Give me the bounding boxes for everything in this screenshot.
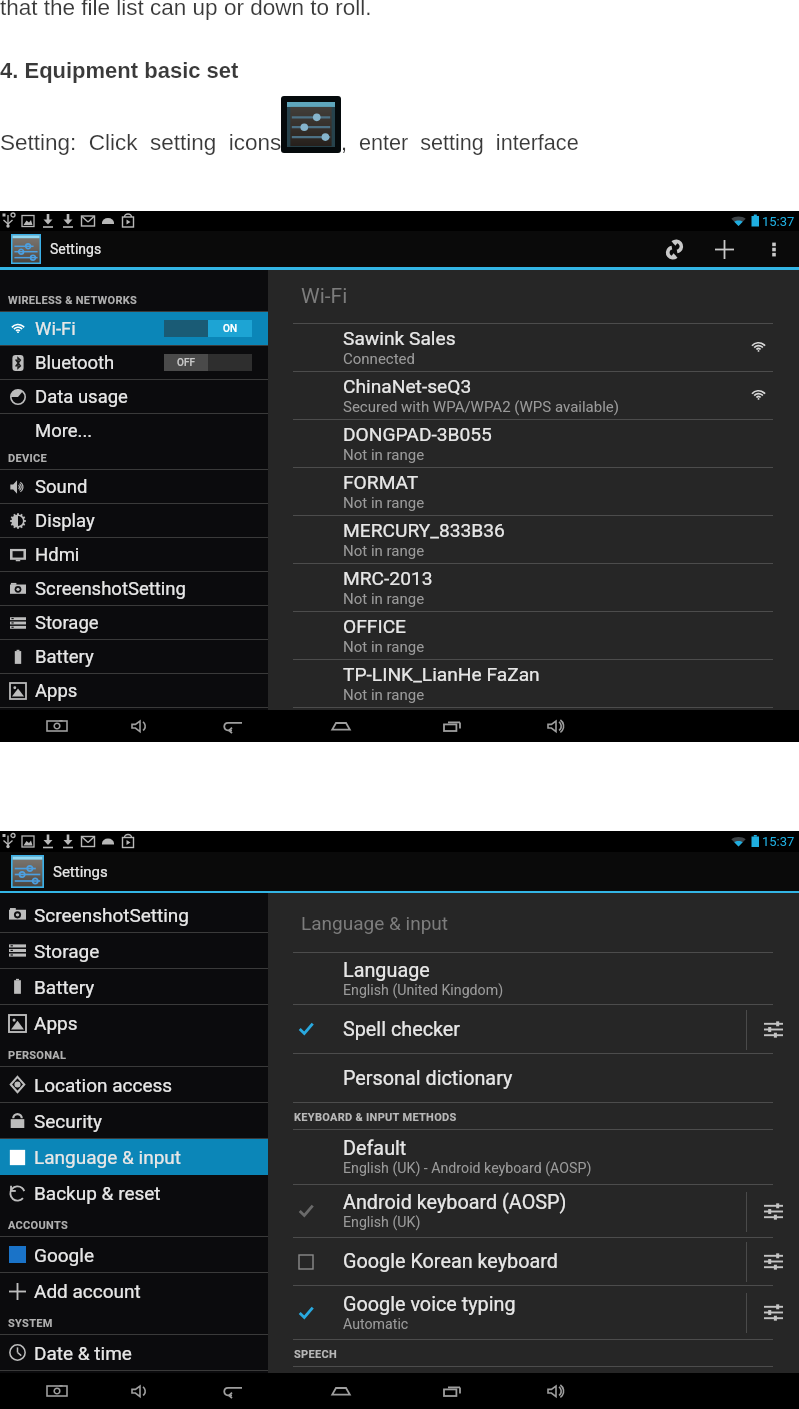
button[interactable]: ON — [164, 320, 252, 337]
button[interactable]: Apps — [0, 674, 268, 707]
staticText: Storage — [35, 612, 99, 634]
button[interactable]: Location access — [0, 1067, 268, 1102]
staticText: WIRELESS & NETWORKS — [8, 294, 138, 307]
staticText: Google voice typing — [343, 1293, 516, 1316]
button[interactable]: OFF — [164, 354, 252, 371]
button[interactable]: Recents — [436, 710, 470, 742]
button[interactable]: Language — [268, 953, 799, 1004]
staticText: 15:37 — [762, 214, 795, 229]
button[interactable]: Spell checker — [268, 1005, 799, 1053]
staticText: English (United Kingdom) — [343, 982, 504, 999]
button[interactable]: Battery — [0, 969, 268, 1004]
button[interactable]: Date & time — [0, 1335, 268, 1370]
button[interactable]: Back — [216, 1374, 250, 1408]
button[interactable]: Add network — [706, 231, 742, 267]
button[interactable]: Display — [0, 504, 268, 537]
button[interactable]: ScreenshotSetting — [0, 572, 268, 605]
button[interactable]: MERCURY_833B36 — [268, 516, 799, 563]
staticText: Not in range — [343, 638, 425, 656]
button[interactable]: Default — [268, 1130, 799, 1184]
staticText: Display — [35, 510, 95, 532]
button[interactable]: Volume — [124, 1374, 158, 1408]
button[interactable]: Refresh — [656, 231, 692, 267]
staticText: Automatic — [343, 1316, 409, 1333]
staticText: Language & input — [34, 1146, 181, 1168]
button[interactable]: Personal dictionary — [268, 1054, 799, 1102]
button[interactable]: More... — [0, 414, 268, 448]
button[interactable]: Storage — [0, 606, 268, 639]
button[interactable]: Settings — [747, 1289, 799, 1336]
button[interactable]: Storage — [0, 933, 268, 968]
staticText: Backup & reset — [34, 1182, 161, 1204]
staticText: Security — [34, 1110, 103, 1132]
staticText: Wi-Fi — [301, 284, 348, 309]
button[interactable]: Google voice typing — [268, 1286, 799, 1339]
button[interactable]: Home — [324, 710, 358, 742]
staticText: Not in range — [343, 494, 425, 512]
staticText: Add account — [34, 1280, 141, 1302]
staticText: DEVICE — [8, 452, 47, 465]
staticText: Data usage — [35, 386, 128, 408]
staticText: Battery — [35, 646, 94, 668]
button[interactable]: Settings — [747, 1188, 799, 1235]
button[interactable]: Add account — [0, 1273, 268, 1309]
button[interactable]: Google Korean keyboard — [268, 1238, 799, 1285]
staticText: Android keyboard (AOSP) — [343, 1191, 567, 1214]
button[interactable]: ChinaNet-seQ3 — [268, 372, 799, 419]
button[interactable]: Back — [216, 710, 250, 742]
button[interactable]: Volume up — [540, 1374, 574, 1408]
button[interactable]: Sound — [0, 470, 268, 503]
staticText: 4. Equipment basic set — [0, 58, 239, 83]
staticText: Spell checker — [343, 1018, 461, 1041]
button[interactable]: Data usage — [0, 380, 268, 413]
staticText: Not in range — [343, 590, 425, 608]
staticText: English (UK) — [343, 1214, 421, 1231]
button[interactable]: Security — [0, 1103, 268, 1138]
button[interactable]: Sawink Sales — [268, 324, 799, 371]
staticText: Settings — [50, 241, 102, 257]
button[interactable]: Volume — [124, 710, 158, 742]
staticText: Setting: Click setting icons — [0, 130, 282, 155]
button[interactable]: TP-LINK_LianHe FaZan — [268, 660, 799, 707]
staticText: KEYBOARD & INPUT METHODS — [294, 1111, 457, 1124]
button[interactable]: Hdmi — [0, 538, 268, 571]
button[interactable]: Battery — [0, 640, 268, 673]
button[interactable]: Screenshot — [40, 710, 74, 742]
button[interactable]: Backup & reset — [0, 1175, 268, 1211]
staticText: Bluetooth — [35, 352, 115, 374]
button[interactable]: Google — [0, 1237, 268, 1272]
staticText: Not in range — [343, 542, 425, 560]
button[interactable]: Language & input — [0, 1139, 268, 1175]
button[interactable]: More options — [756, 231, 792, 267]
button[interactable]: Volume up — [540, 710, 574, 742]
button[interactable]: Android keyboard (AOSP) — [268, 1185, 799, 1237]
staticText: that the file list can up or down to rol… — [0, 0, 372, 20]
staticText: DONGPAD-3B055 — [343, 423, 492, 446]
staticText: SPEECH — [294, 1348, 338, 1361]
button[interactable]: ScreenshotSetting — [0, 897, 268, 932]
button[interactable]: Home — [324, 1374, 358, 1408]
button[interactable]: FORMAT — [268, 468, 799, 515]
button[interactable]: DONGPAD-3B055 — [268, 420, 799, 467]
button[interactable]: Wi-Fi — [0, 312, 268, 345]
button[interactable]: Screenshot — [40, 1374, 74, 1408]
button[interactable]: Apps — [0, 1005, 268, 1041]
staticText: Battery — [34, 976, 95, 998]
button[interactable]: OFFICE — [268, 612, 799, 659]
staticText: Sound — [35, 476, 88, 498]
staticText: Settings — [53, 863, 108, 881]
staticText: ON — [223, 323, 237, 335]
staticText: Google Korean keyboard — [343, 1250, 558, 1273]
button[interactable]: Recents — [436, 1374, 470, 1408]
button[interactable]: Settings — [747, 1006, 799, 1053]
staticText: Not in range — [343, 686, 425, 704]
button[interactable]: Bluetooth — [0, 346, 268, 379]
staticText: Secured with WPA/WPA2 (WPS available) — [343, 398, 620, 416]
staticText: 15:37 — [762, 834, 795, 849]
button[interactable]: Settings — [747, 1238, 799, 1285]
staticText: OFFICE — [343, 615, 407, 638]
staticText: Not in range — [343, 446, 425, 464]
staticText: Apps — [34, 1012, 78, 1034]
button[interactable]: MRC-2013 — [268, 564, 799, 611]
staticText: Wi-Fi — [35, 318, 76, 340]
